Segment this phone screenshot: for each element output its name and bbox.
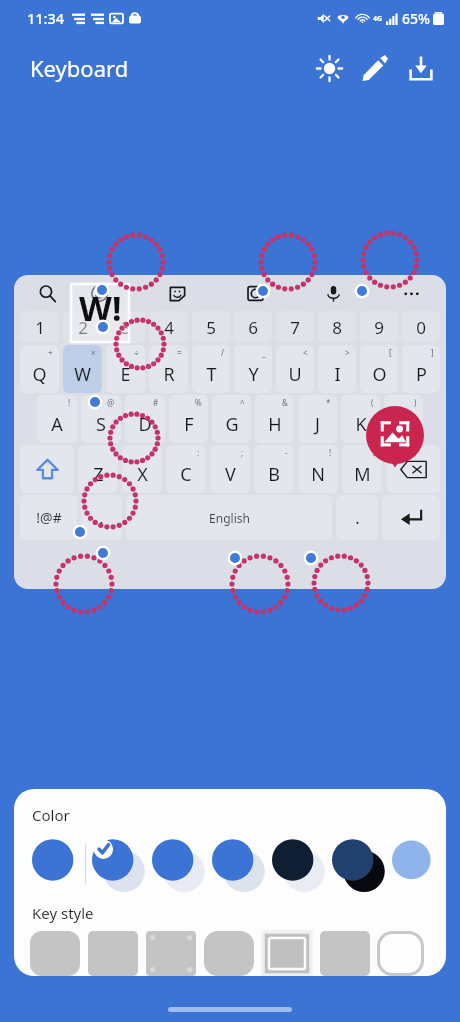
- button[interactable]: Search: [34, 280, 60, 306]
- button[interactable]: Camera: [242, 280, 268, 306]
- button[interactable]: 7: [276, 311, 314, 343]
- button[interactable]: ): [384, 395, 423, 443]
- button[interactable]: [: [360, 345, 398, 393]
- button[interactable]: Key style option: [320, 931, 370, 976]
- button[interactable]: 5: [192, 311, 230, 343]
- button[interactable]: ': [78, 445, 118, 493]
- button[interactable]: Voice input: [320, 280, 346, 306]
- button[interactable]: Emoji: [86, 280, 112, 306]
- button[interactable]: Color option 5: [270, 835, 330, 893]
- button[interactable]: 1: [20, 311, 59, 343]
- button[interactable]: ;: [210, 445, 250, 493]
- staticText: K: [355, 412, 367, 437]
- button[interactable]: 0: [402, 311, 440, 343]
- staticText: Key style: [32, 903, 94, 923]
- staticText: P: [416, 362, 427, 387]
- button[interactable]: 4: [149, 311, 188, 343]
- button[interactable]: Shift: [20, 445, 74, 493]
- button[interactable]: +: [20, 345, 59, 393]
- button[interactable]: Backspace: [386, 445, 440, 493]
- staticText: 65%: [402, 9, 430, 28]
- button[interactable]: (: [341, 395, 380, 443]
- staticText: +: [48, 347, 53, 358]
- staticText: Y: [248, 362, 259, 387]
- button[interactable]: _: [234, 345, 272, 393]
- button[interactable]: Color option 4: [210, 835, 270, 893]
- button[interactable]: >: [318, 345, 356, 393]
- staticText: [: [389, 347, 392, 358]
- button[interactable]: Key style option: [146, 931, 196, 976]
- staticText: :: [197, 447, 200, 458]
- staticText: 0: [416, 316, 426, 339]
- staticText: ÷: [134, 347, 139, 358]
- button[interactable]: Brightness: [306, 45, 352, 91]
- staticText: /: [221, 347, 224, 358]
- button[interactable]: <: [276, 345, 314, 393]
- button[interactable]: Search: [14, 275, 446, 589]
- button[interactable]: #: [125, 395, 165, 443]
- staticText: C: [180, 462, 192, 487]
- staticText: 2: [78, 316, 88, 339]
- button[interactable]: ÷: [106, 345, 145, 393]
- button[interactable]: Color option 6: [330, 835, 390, 893]
- staticText: ]: [431, 347, 434, 358]
- staticText: .: [355, 507, 360, 529]
- button[interactable]: Key style option: [30, 931, 80, 976]
- button[interactable]: 6: [234, 311, 272, 343]
- button[interactable]: More key styles: [377, 931, 397, 976]
- staticText: #: [153, 397, 159, 408]
- button[interactable]: Key style option: [204, 931, 254, 976]
- button[interactable]: English: [126, 495, 332, 540]
- button[interactable]: -: [254, 445, 294, 493]
- button[interactable]: Enter: [382, 495, 440, 540]
- staticText: H: [268, 412, 282, 437]
- button[interactable]: =: [149, 345, 188, 393]
- button[interactable]: !: [37, 395, 77, 443]
- button[interactable]: Color option 3: [150, 835, 210, 893]
- button[interactable]: Key style option: [88, 931, 138, 976]
- button[interactable]: /: [192, 345, 230, 393]
- button[interactable]: Color option 1: [30, 835, 90, 893]
- button[interactable]: Color option 7: [390, 835, 446, 893]
- button[interactable]: More options: [398, 280, 424, 306]
- button[interactable]: ": [122, 445, 162, 493]
- staticText: 1: [35, 316, 45, 339]
- button[interactable]: 8: [318, 311, 356, 343]
- staticText: U: [288, 362, 302, 387]
- button[interactable]: :: [166, 445, 206, 493]
- staticText: <: [303, 347, 308, 358]
- button[interactable]: Color option 2: [90, 835, 150, 893]
- button[interactable]: ×: [63, 345, 102, 393]
- button[interactable]: .: [336, 495, 378, 540]
- button[interactable]: *: [298, 395, 337, 443]
- staticText: T: [206, 362, 217, 387]
- staticText: W: [74, 362, 91, 387]
- staticText: S: [96, 412, 106, 437]
- staticText: &: [282, 397, 288, 408]
- button[interactable]: &: [255, 395, 294, 443]
- button[interactable]: Edit: [352, 45, 398, 91]
- staticText: _: [262, 347, 266, 358]
- button[interactable]: Stickers: [164, 280, 190, 306]
- button[interactable]: ^: [212, 395, 251, 443]
- staticText: O: [372, 362, 387, 387]
- button[interactable]: Download: [398, 45, 444, 91]
- button[interactable]: %: [169, 395, 208, 443]
- button[interactable]: !: [298, 445, 338, 493]
- button[interactable]: @: [81, 395, 121, 443]
- button[interactable]: 3: [106, 311, 145, 343]
- staticText: W!: [79, 285, 122, 331]
- button[interactable]: ?: [342, 445, 382, 493]
- staticText: I: [334, 362, 341, 387]
- button[interactable]: ]: [402, 345, 440, 393]
- button[interactable]: 2: [63, 311, 102, 343]
- button[interactable]: Image search: [366, 406, 424, 464]
- button[interactable]: 9: [360, 311, 398, 343]
- staticText: ': [110, 447, 112, 458]
- button[interactable]: Key style option: [262, 931, 312, 976]
- staticText: ,: [99, 507, 104, 529]
- staticText: 7: [290, 316, 300, 339]
- staticText: V: [225, 462, 236, 487]
- button[interactable]: ,: [81, 495, 122, 540]
- button[interactable]: !@#: [20, 495, 77, 540]
